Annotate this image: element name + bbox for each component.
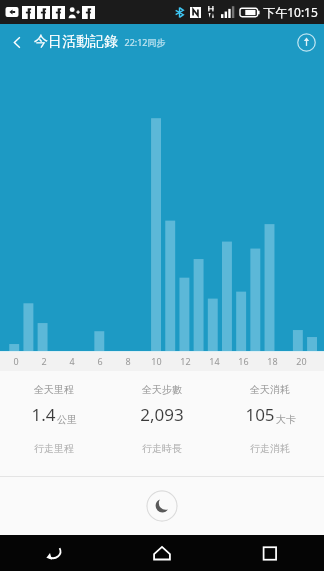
button[interactable]: 全天消耗 (216, 383, 324, 426)
button[interactable] (0, 60, 324, 351)
staticText: 8 (125, 355, 131, 367)
button[interactable]: 返回 (0, 535, 108, 571)
staticText: 6 (97, 355, 103, 367)
staticText: 18 (267, 355, 278, 367)
staticText: 22:12同步 (124, 36, 166, 48)
staticText: 2 (41, 355, 47, 367)
staticText: 20 (296, 355, 307, 367)
button[interactable]: 同步 (288, 24, 324, 60)
button[interactable]: 全天里程 (0, 383, 108, 426)
staticText: 大卡 (276, 413, 296, 426)
staticText: 10 (151, 355, 162, 367)
staticText: 全天消耗 (250, 383, 290, 396)
staticText: 全天里程 (34, 383, 74, 396)
staticText: 14 (209, 355, 220, 367)
staticText: 2,093 (140, 403, 184, 426)
staticText: 下午10:15 (263, 4, 318, 20)
staticText: 16 (238, 355, 249, 367)
button[interactable]: 主畫面 (108, 535, 216, 571)
staticText: 4 (69, 355, 75, 367)
button[interactable]: 行走里程 (0, 442, 108, 455)
button[interactable]: 行走時長 (108, 442, 216, 455)
staticText: 全天步數 (142, 383, 182, 396)
staticText: 行走里程 (34, 442, 74, 455)
staticText: 公里 (57, 413, 77, 426)
staticText: 行走消耗 (250, 442, 290, 455)
staticText: 12 (180, 355, 191, 367)
button[interactable]: 返回 (0, 25, 34, 59)
button[interactable]: 睡眠 (146, 490, 178, 522)
button[interactable]: 最近應用程式 (216, 535, 324, 571)
staticText: 行走時長 (142, 442, 182, 455)
staticText: 0 (13, 355, 19, 367)
staticText: 今日活動記錄 (34, 33, 118, 51)
button[interactable]: 全天步數 (108, 383, 216, 426)
button[interactable]: 行走消耗 (216, 442, 324, 455)
staticText: 105 (245, 403, 275, 426)
staticText: 1.4 (31, 403, 56, 426)
